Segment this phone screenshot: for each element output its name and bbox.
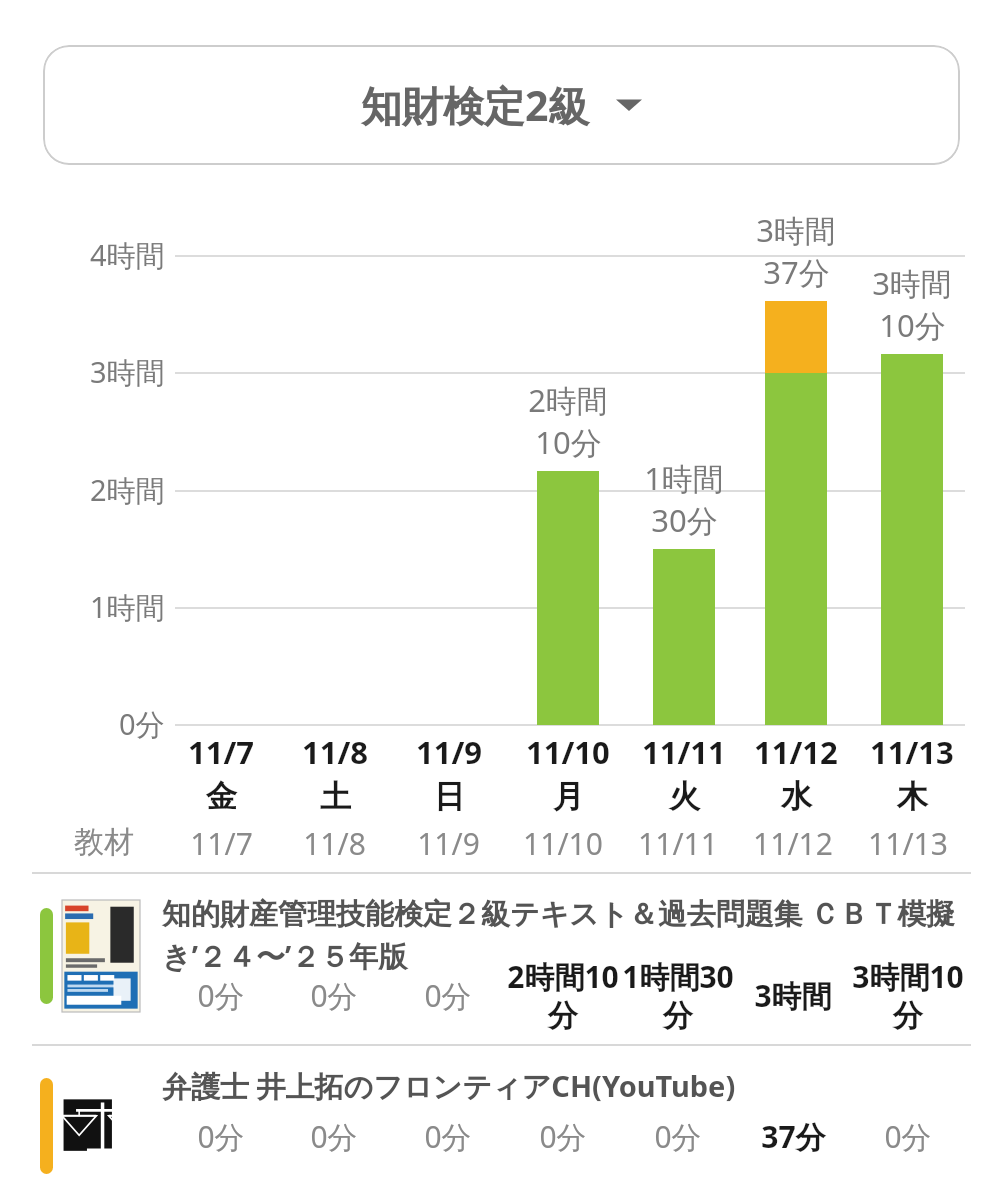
- staticText: 1時間30: [622, 956, 734, 997]
- staticText: 37分: [763, 251, 830, 293]
- staticText: 火: [669, 777, 700, 816]
- staticText: 知財検定2級: [361, 77, 590, 133]
- staticText: 11/7: [190, 823, 253, 864]
- staticText: 0分: [119, 704, 165, 744]
- other: 知財検定2級テキスト: [62, 900, 140, 1012]
- staticText: 月: [553, 777, 584, 816]
- staticText: 11/11: [638, 823, 718, 864]
- other: 弁護士チャンネル: [62, 1090, 140, 1168]
- staticText: 0分: [884, 1116, 932, 1157]
- staticText: 木: [897, 777, 928, 816]
- staticText: 1時間: [644, 457, 724, 499]
- staticText: 0分: [310, 1116, 358, 1157]
- staticText: 0分: [424, 1116, 472, 1157]
- staticText: 11/9: [416, 731, 483, 773]
- staticText: 11/8: [303, 823, 366, 864]
- staticText: 知的財産管理技能検定２級テキスト＆過去問題集 ＣＢＴ模擬試験付: [162, 893, 962, 933]
- staticText: 0分: [310, 975, 358, 1016]
- button[interactable]: [0, 876, 1003, 1042]
- staticText: 30分: [651, 499, 718, 541]
- staticText: 分: [663, 997, 693, 1035]
- staticText: 弁護士 井上拓のフロンティアCH(YouTube): [162, 1066, 736, 1106]
- staticText: 4時間: [90, 235, 165, 275]
- button[interactable]: [0, 1048, 1003, 1188]
- staticText: 2時間10: [507, 956, 619, 997]
- staticText: 11/8: [302, 731, 369, 773]
- staticText: 3時間: [872, 262, 952, 304]
- staticText: 土: [320, 777, 351, 816]
- staticText: 11/7: [188, 731, 255, 773]
- staticText: 11/12: [753, 823, 833, 864]
- staticText: 分: [893, 997, 923, 1035]
- staticText: 2時間: [90, 470, 165, 510]
- staticText: 教材: [74, 823, 134, 861]
- staticText: 3時間: [90, 352, 165, 392]
- staticText: 11/10: [526, 731, 610, 773]
- staticText: 0分: [424, 975, 472, 1016]
- staticText: 10分: [535, 421, 602, 463]
- staticText: 3時間10: [852, 956, 964, 997]
- staticText: 0分: [654, 1116, 702, 1157]
- staticText: 11/13: [868, 823, 948, 864]
- staticText: 2時間: [528, 379, 608, 421]
- staticText: 0分: [197, 1116, 245, 1157]
- staticText: 3時間: [754, 975, 832, 1016]
- staticText: 11/10: [523, 823, 603, 864]
- staticText: き’２４〜’２５年版: [162, 936, 408, 976]
- staticText: 金: [206, 777, 237, 816]
- staticText: 10分: [879, 304, 946, 346]
- button[interactable]: 知財検定2級: [43, 45, 960, 165]
- staticText: 0分: [539, 1116, 587, 1157]
- staticText: 1時間: [90, 587, 165, 627]
- staticText: 37分: [761, 1116, 826, 1157]
- staticText: 11/13: [870, 731, 954, 773]
- staticText: 11/11: [642, 731, 726, 773]
- staticText: 11/9: [417, 823, 480, 864]
- staticText: 3時間: [756, 209, 836, 251]
- staticText: 0分: [197, 975, 245, 1016]
- staticText: 11/12: [754, 731, 838, 773]
- staticText: 分: [548, 997, 578, 1035]
- staticText: 水: [781, 777, 812, 816]
- staticText: 日: [434, 777, 465, 816]
